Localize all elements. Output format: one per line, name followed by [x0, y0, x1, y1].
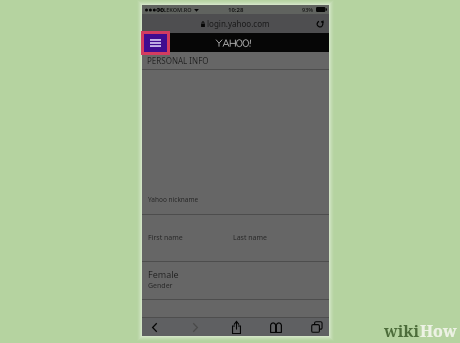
button[interactable]: Menu [144, 34, 167, 52]
staticText: 10:28 [228, 6, 244, 14]
button[interactable]: Forward [188, 318, 202, 336]
button[interactable]: Bookmarks [269, 318, 283, 336]
button[interactable]: First name [142, 215, 329, 261]
staticText: How [420, 320, 457, 342]
staticText: Last name [233, 233, 268, 243]
staticText: PERSONAL INFO [147, 55, 209, 66]
staticText: TELEKOM.RO [157, 6, 192, 13]
button[interactable]: Share [229, 318, 243, 336]
staticText: wiki [384, 320, 420, 342]
staticText: 93% [302, 6, 314, 13]
staticText: Yahoo nickname [148, 195, 199, 204]
button[interactable]: Tabs [310, 318, 324, 336]
button[interactable]: Reload [315, 19, 325, 29]
staticText: First name [148, 233, 183, 243]
staticText: login.yahoo.com [207, 18, 270, 29]
button[interactable]: Back [147, 318, 161, 336]
staticText: Gender [148, 281, 173, 291]
button[interactable]: Female [142, 262, 329, 299]
staticText: Female [148, 268, 179, 280]
